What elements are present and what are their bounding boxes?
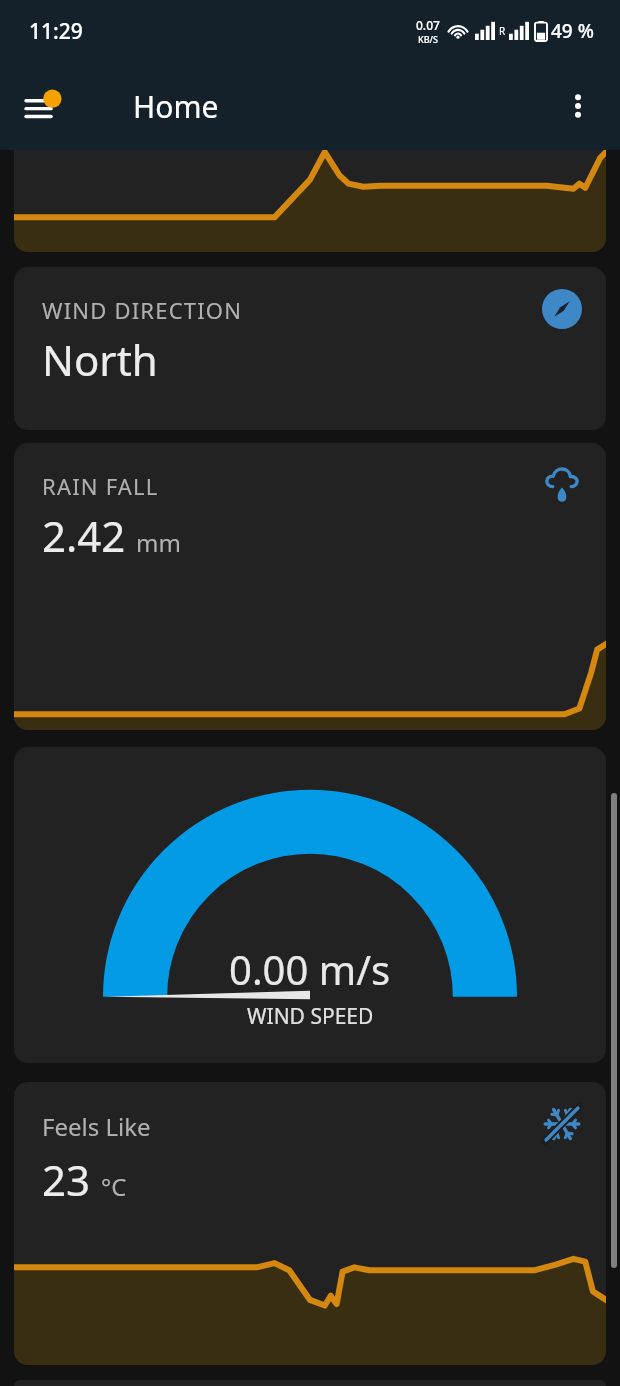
staticText: North (42, 331, 158, 388)
button[interactable]: Feels Like (14, 1082, 606, 1365)
staticText: 0.00 m/s (229, 942, 391, 996)
button[interactable] (14, 150, 606, 252)
button[interactable]: Open navigation menu (22, 83, 68, 129)
staticText: Feels Like (42, 1110, 151, 1143)
button[interactable]: 0.00 m/s (14, 747, 606, 1063)
staticText: R (499, 24, 506, 38)
button[interactable]: WIND DIRECTION (14, 267, 606, 430)
staticText: KB/S (418, 33, 438, 45)
staticText: mm (136, 526, 181, 559)
staticText: WIND SPEED (247, 1002, 374, 1031)
staticText: 49 % (551, 18, 594, 44)
button[interactable]: RAIN FALL (14, 443, 606, 730)
staticText: RAIN FALL (42, 471, 159, 501)
staticText: 2.42 (42, 507, 126, 564)
staticText: °C (101, 1170, 127, 1203)
staticText: Home (133, 86, 219, 127)
button[interactable]: More options (558, 86, 598, 126)
staticText: 11:29 (29, 17, 83, 46)
staticText: 0.07 (416, 17, 440, 33)
staticText: 23 (42, 1151, 91, 1208)
staticText: WIND DIRECTION (42, 295, 243, 325)
